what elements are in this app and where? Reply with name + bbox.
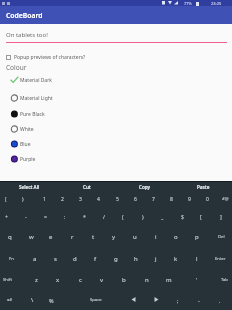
button[interactable]: Cut (67, 180, 107, 194)
button[interactable]: Enter (200, 252, 232, 266)
button[interactable]: 3 (60, 192, 100, 206)
button[interactable]: 2 (42, 192, 82, 206)
staticText: v (100, 276, 104, 284)
button[interactable]: #@ (205, 192, 232, 206)
button[interactable]: v (82, 273, 122, 287)
staticText: r (71, 233, 74, 241)
button[interactable]: Popup previews of characters? (5, 52, 105, 62)
button[interactable] (123, 292, 143, 307)
button[interactable]: ( (103, 209, 143, 223)
staticText: 3 (79, 196, 82, 203)
button[interactable]: l (177, 252, 217, 266)
button[interactable]: t (73, 230, 113, 244)
button[interactable]: j (136, 252, 176, 266)
button[interactable]: 7 (133, 192, 173, 206)
button[interactable]: . (200, 293, 232, 307)
button[interactable]: White (6, 123, 96, 135)
button[interactable]: Tab (204, 273, 232, 287)
button[interactable]: 6 (115, 192, 155, 206)
button[interactable]: Space (76, 293, 116, 307)
staticText: d (73, 255, 77, 263)
button[interactable]: q (0, 230, 30, 244)
staticText: e (49, 233, 53, 241)
button[interactable]: ( (0, 192, 26, 206)
button[interactable]: ; (158, 293, 198, 307)
button[interactable]: ] (201, 209, 232, 223)
button[interactable]: [ (181, 209, 221, 223)
staticText: c (79, 276, 82, 284)
button[interactable]: y (94, 230, 134, 244)
button[interactable]: s (35, 252, 75, 266)
button[interactable]: ' (177, 273, 217, 287)
button[interactable]: n (127, 273, 167, 287)
button[interactable]: p (177, 230, 217, 244)
button[interactable]: % (31, 293, 71, 307)
button[interactable]: z (16, 273, 56, 287)
button[interactable]: e (31, 230, 71, 244)
button[interactable]: 5 (97, 192, 137, 206)
button[interactable]: Paste (183, 180, 223, 194)
button[interactable]: b (104, 273, 144, 287)
button[interactable]: : (45, 209, 85, 223)
button[interactable]: w (11, 230, 51, 244)
button[interactable] (146, 292, 166, 307)
button[interactable]: a# (0, 293, 30, 307)
button[interactable]: Del (201, 230, 232, 244)
button[interactable]: g (96, 252, 136, 266)
staticText: $ (181, 213, 184, 220)
button[interactable]: _ (142, 209, 182, 223)
staticText: i (155, 233, 157, 241)
button[interactable]: - (179, 293, 219, 307)
button[interactable]: 9 (169, 192, 209, 206)
button[interactable]: CodeBoard (0, 6, 232, 24)
staticText: ) (142, 213, 144, 220)
button[interactable]: / (84, 209, 124, 223)
button[interactable]: f (75, 252, 115, 266)
button[interactable]: i (136, 230, 176, 244)
button[interactable]: Material Light (6, 92, 96, 104)
staticText: Shift (3, 277, 12, 283)
button[interactable]: 0 (187, 192, 227, 206)
button[interactable]: x (38, 273, 78, 287)
button[interactable]: m (149, 273, 189, 287)
button[interactable]: c (60, 273, 100, 287)
staticText: ] (220, 213, 222, 220)
staticText: g (114, 255, 118, 263)
button[interactable]: $ (162, 209, 202, 223)
staticText: Fn (9, 256, 14, 262)
button[interactable]: ) (3, 192, 43, 206)
staticText: [ (200, 213, 202, 220)
button[interactable]: r (52, 230, 92, 244)
button[interactable]: Fn (0, 252, 31, 266)
button[interactable]: 8 (151, 192, 191, 206)
button[interactable]: + (0, 209, 26, 223)
button[interactable]: Select All (9, 180, 49, 194)
staticText: n (145, 276, 149, 284)
button[interactable]: Pure Black (6, 108, 96, 120)
button[interactable]: Shift (0, 273, 27, 287)
staticText: 6 (134, 196, 137, 203)
button[interactable]: d (55, 252, 95, 266)
button[interactable]: u (115, 230, 155, 244)
button[interactable]: 4 (78, 192, 118, 206)
button[interactable]: ) (123, 209, 163, 223)
staticText: Material Light (20, 95, 53, 102)
button[interactable]: a (15, 252, 55, 266)
button[interactable]: k (156, 252, 196, 266)
button[interactable]: \ (12, 293, 52, 307)
staticText: k (174, 255, 178, 263)
button[interactable]: - (6, 209, 46, 223)
staticText: 1 (43, 196, 46, 203)
button[interactable]: * (64, 209, 104, 223)
staticText: 8 (170, 196, 173, 203)
button[interactable]: 1 (24, 192, 64, 206)
button[interactable]: Blue (6, 138, 96, 150)
button[interactable]: = (25, 209, 65, 223)
button[interactable]: Copy (125, 180, 165, 194)
button[interactable]: h (116, 252, 156, 266)
button[interactable]: o (156, 230, 196, 244)
button[interactable]: Purple (6, 153, 96, 165)
staticText: Paste (197, 184, 210, 190)
staticText: : (64, 213, 66, 220)
button[interactable]: Material Dark (6, 74, 96, 86)
